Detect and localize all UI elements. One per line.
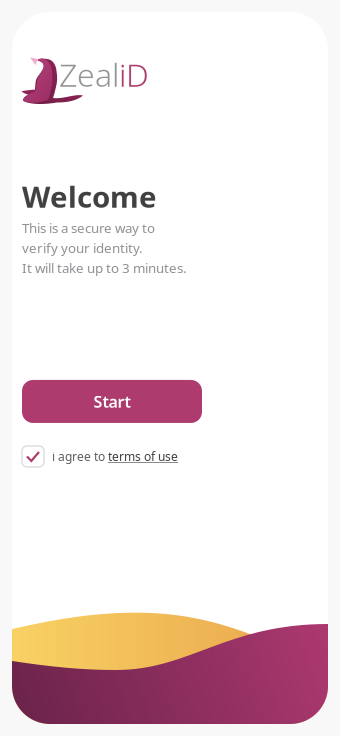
- staticText: Zeal: [59, 53, 119, 95]
- staticText: It will take up to 3 minutes.: [22, 259, 187, 277]
- button[interactable]: Start: [22, 380, 202, 423]
- staticText: Start: [93, 391, 130, 412]
- staticText: terms of use: [108, 448, 178, 464]
- staticText: i agree to: [52, 448, 108, 464]
- staticText: This is a secure way to: [22, 219, 155, 237]
- staticText: verify your identity.: [22, 239, 143, 257]
- staticText: iD: [119, 53, 149, 95]
- staticText: Welcome: [22, 177, 157, 216]
- button[interactable]: i agree to: [22, 446, 178, 467]
